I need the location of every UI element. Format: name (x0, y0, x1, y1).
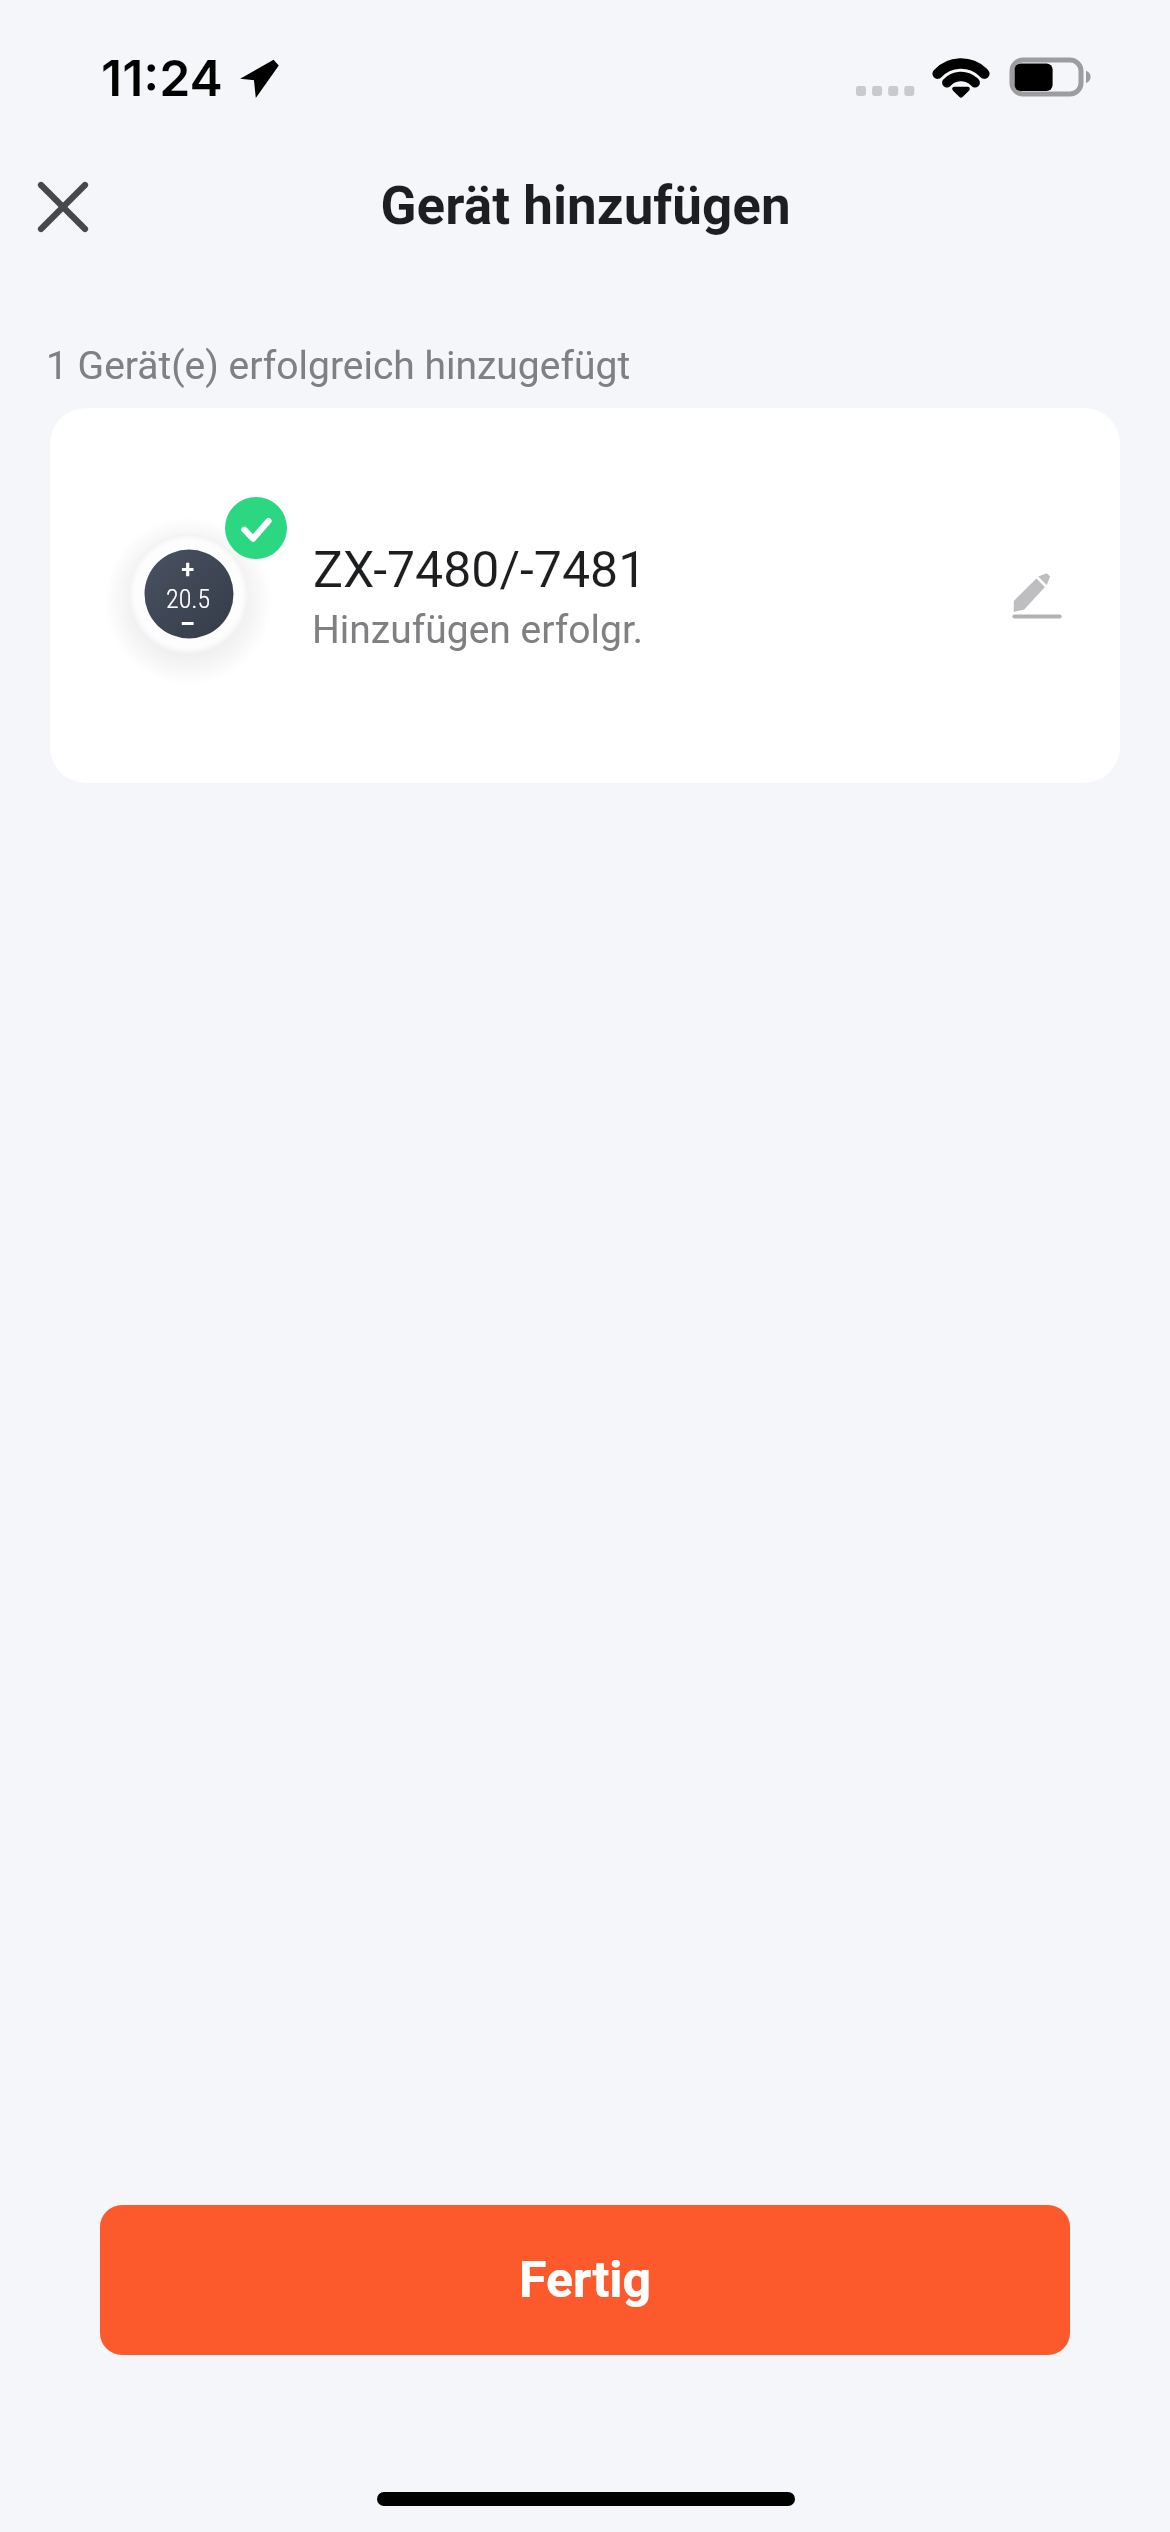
staticText: 20.5 (166, 584, 211, 614)
staticText: 1 Gerät(e) erfolgreich hinzugefügt (46, 343, 631, 389)
button[interactable]: Edit (987, 545, 1087, 645)
staticText: ZX-7480/-7481 (313, 541, 647, 600)
button[interactable]: Close (13, 157, 113, 257)
button[interactable]: Fertig (100, 2205, 1070, 2355)
staticText: Hinzufügen erfolgr. (312, 607, 644, 653)
staticText: Gerät hinzufügen (380, 175, 791, 237)
button[interactable]: 20.5 (50, 408, 1120, 783)
staticText: Fertig (519, 2251, 652, 2310)
staticText: 11:24 (101, 48, 223, 108)
